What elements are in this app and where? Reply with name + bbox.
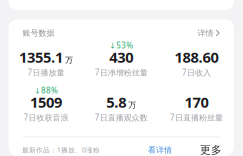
staticText: 7日净增粉丝量: [95, 67, 148, 78]
staticText: 170: [184, 92, 208, 112]
staticText: ↓88%: [34, 85, 58, 96]
staticText: 账号数据: [22, 28, 54, 38]
staticText: 7日收获音浪: [24, 112, 69, 123]
staticText: 188.60: [174, 47, 218, 67]
staticText: 详情: [198, 28, 214, 38]
staticText: 万: [128, 100, 136, 110]
staticText: 7日直播粉丝量: [170, 112, 223, 123]
button[interactable]: 看详情: [148, 145, 172, 155]
staticText: 7日直播观众数: [95, 112, 148, 123]
staticText: 更多: [200, 143, 222, 156]
staticText: 1355.1: [19, 47, 63, 67]
staticText: 万: [65, 55, 73, 65]
button[interactable]: 详情: [198, 28, 220, 38]
staticText: ↓53%: [109, 40, 133, 51]
staticText: 7日播放量: [28, 67, 65, 78]
staticText: 5.8: [106, 92, 126, 112]
staticText: 430: [109, 47, 133, 67]
staticText: 7日收入: [182, 67, 211, 78]
staticText: 最新作品：1播放、0涨粉: [22, 146, 100, 154]
staticText: 看详情: [148, 145, 172, 155]
button[interactable]: 更多: [200, 143, 222, 156]
staticText: 1509: [30, 92, 62, 112]
